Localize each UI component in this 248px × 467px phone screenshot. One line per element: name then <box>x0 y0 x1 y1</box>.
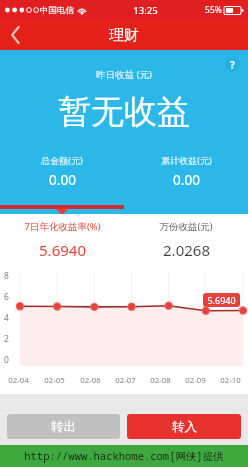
staticText: 2 <box>4 333 9 345</box>
staticText: 8 <box>4 270 9 282</box>
button[interactable]: Back <box>0 20 30 50</box>
staticText: ? <box>230 58 235 72</box>
button[interactable]: 万份收益(元) <box>124 220 248 260</box>
staticText: 累计收益(元) <box>161 154 212 166</box>
button[interactable]: 转出 <box>7 414 120 439</box>
staticText: 万份收益(元) <box>159 220 213 233</box>
staticText: 5.6940 <box>207 294 236 306</box>
button[interactable]: Help <box>225 57 240 72</box>
staticText: 5.6940 <box>39 240 86 260</box>
staticText: 02-08 <box>150 375 171 386</box>
staticText: 转入 <box>172 419 197 435</box>
staticText: 02-10 <box>220 375 241 386</box>
staticText: 6 <box>4 291 9 303</box>
staticText: http://www.hackhome.com[网侠]提供 <box>24 449 224 463</box>
staticText: 02-05 <box>44 375 65 386</box>
staticText: 02-04 <box>8 375 29 386</box>
staticText: 02-06 <box>80 375 101 386</box>
staticText: 4 <box>4 312 9 324</box>
staticText: 02-07 <box>115 375 136 386</box>
staticText: 0.00 <box>49 171 76 189</box>
staticText: 昨日收益 (元) <box>96 68 152 81</box>
staticText: 0 <box>4 354 9 366</box>
button[interactable]: 转入 <box>127 414 241 439</box>
staticText: 02-09 <box>185 375 206 386</box>
staticText: 7日年化收益率(%) <box>24 220 101 233</box>
staticText: 0.00 <box>173 171 200 189</box>
staticText: 2.0268 <box>163 240 210 260</box>
staticText: 13:25 <box>133 4 158 17</box>
staticText: 暂无收益 <box>58 91 190 133</box>
staticText: 转出 <box>51 419 76 435</box>
staticText: 55% <box>205 4 222 16</box>
staticText: 中国电信 <box>40 5 74 16</box>
staticText: 总金额(元) <box>41 154 83 166</box>
button[interactable]: 7日年化收益率(%) <box>0 220 124 260</box>
staticText: 理财 <box>109 26 139 45</box>
